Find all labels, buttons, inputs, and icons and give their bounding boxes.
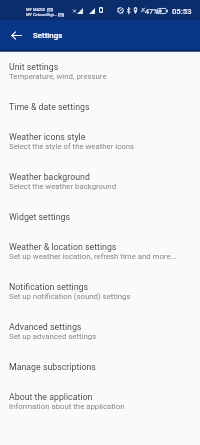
staticText: About the application [9,392,93,402]
staticText: 47% [145,7,159,16]
button[interactable]: About the application [0,380,200,420]
staticText: Select the weather background [9,182,117,191]
staticText: Unit settings [9,62,59,72]
staticText: Information about the application [9,402,125,411]
staticText: Weather background [9,172,90,182]
staticText: Temperature, wind, pressure [9,72,107,81]
button[interactable]: Advanced settings [0,310,200,350]
staticText: Time & date settings [9,102,90,112]
staticText: Set up advanced settings [9,332,97,341]
staticText: Advanced settings [9,322,82,332]
staticText: MY CelcomDigi... [26,12,57,17]
staticText: MY MAXIS [26,7,46,12]
button[interactable]: Weather icons style [0,120,200,160]
button[interactable]: Time & date settings [0,90,200,120]
staticText: Weather & location settings [9,242,117,252]
button[interactable]: Unit settings [0,50,200,90]
staticText: Settings [33,31,63,40]
button[interactable]: Widget settings [0,200,200,230]
staticText: Notification settings [9,282,89,292]
staticText: Set up weather location, refresh time an… [9,252,177,261]
button[interactable]: Notification settings [0,270,200,310]
staticText: Weather icons style [9,132,86,142]
staticText: Widget settings [9,212,71,222]
staticText: 4G+ [48,9,53,12]
staticText: Manage subscriptions [9,362,96,372]
staticText: 05:53 [172,7,192,16]
staticText: 4G [59,14,63,17]
button[interactable]: Manage subscriptions [0,350,200,380]
staticText: Set up notification (sound) settings [9,292,131,301]
staticText: Select the style of the weather icons [9,142,135,151]
button[interactable]: Back [5,24,27,46]
button[interactable]: Weather background [0,160,200,200]
button[interactable]: Weather & location settings [0,230,200,270]
